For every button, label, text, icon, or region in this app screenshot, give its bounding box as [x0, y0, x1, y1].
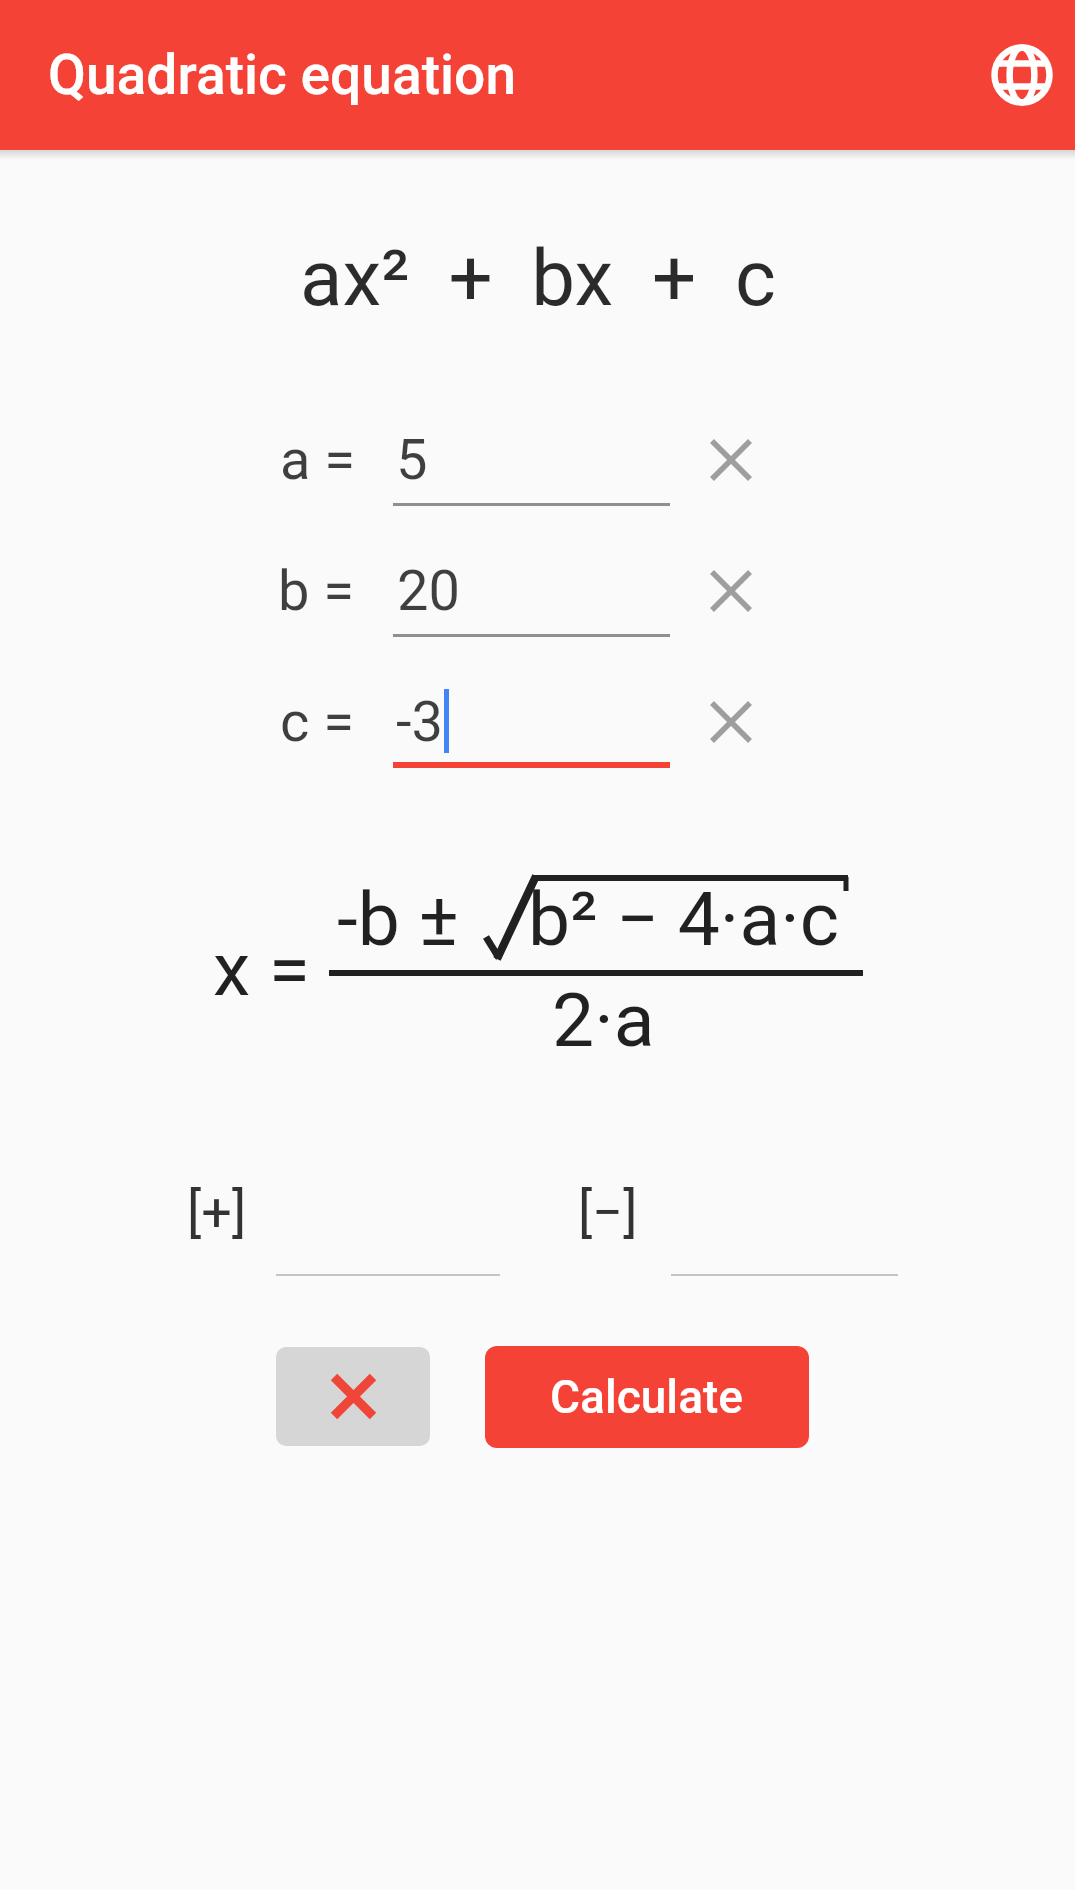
staticText: 20 [397, 558, 460, 624]
staticText: ax² + bx + c [300, 233, 776, 324]
staticText: -b ± [337, 875, 478, 963]
staticText: x = [213, 925, 310, 1013]
staticText: c = [280, 689, 354, 755]
staticText: 2·a [552, 976, 655, 1064]
button[interactable] [712, 441, 750, 479]
button[interactable] [276, 1347, 430, 1446]
staticText: [+] [187, 1181, 247, 1244]
staticText: a = [280, 427, 356, 493]
button[interactable]: Calculate [485, 1346, 809, 1448]
staticText: 5 [396, 427, 428, 493]
button[interactable] [712, 703, 750, 741]
button[interactable] [712, 572, 750, 610]
staticText: [−] [578, 1181, 638, 1244]
staticText: -3 [396, 689, 443, 755]
staticText: b² − 4·a·c [528, 875, 840, 963]
button[interactable] [991, 44, 1053, 106]
staticText: Calculate [550, 1370, 744, 1424]
staticText: Quadratic equation [48, 43, 516, 107]
staticText: b = [278, 558, 355, 624]
